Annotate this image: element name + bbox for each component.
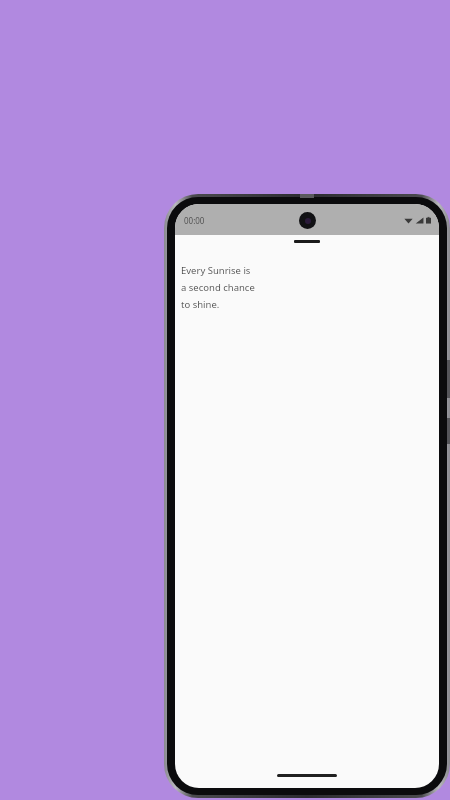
staticText: 00:00 [184, 215, 205, 226]
button[interactable]: Every Sunrise is a second chance to shin… [181, 264, 255, 311]
other: Home gesture bar [277, 774, 337, 777]
staticText: Every Sunrise is a second chance to shin… [181, 264, 255, 311]
